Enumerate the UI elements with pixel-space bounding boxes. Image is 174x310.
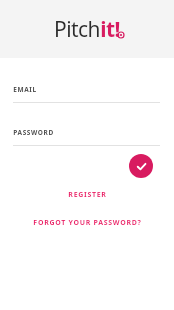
staticText: Pitch [54, 15, 100, 44]
staticText: EMAIL [13, 85, 37, 94]
staticText: FORGOT YOUR PASSWORD? [33, 218, 142, 228]
button[interactable]: PASSWORD [13, 128, 160, 146]
staticText: REGISTER [68, 190, 107, 200]
button[interactable]: REGISTER [58, 187, 117, 203]
button[interactable]: EMAIL [13, 85, 160, 103]
button[interactable]: FORGOT YOUR PASSWORD? [23, 215, 152, 231]
staticText: it! [100, 15, 120, 44]
button[interactable]: Sign in [129, 154, 153, 178]
staticText: PASSWORD [13, 128, 54, 137]
